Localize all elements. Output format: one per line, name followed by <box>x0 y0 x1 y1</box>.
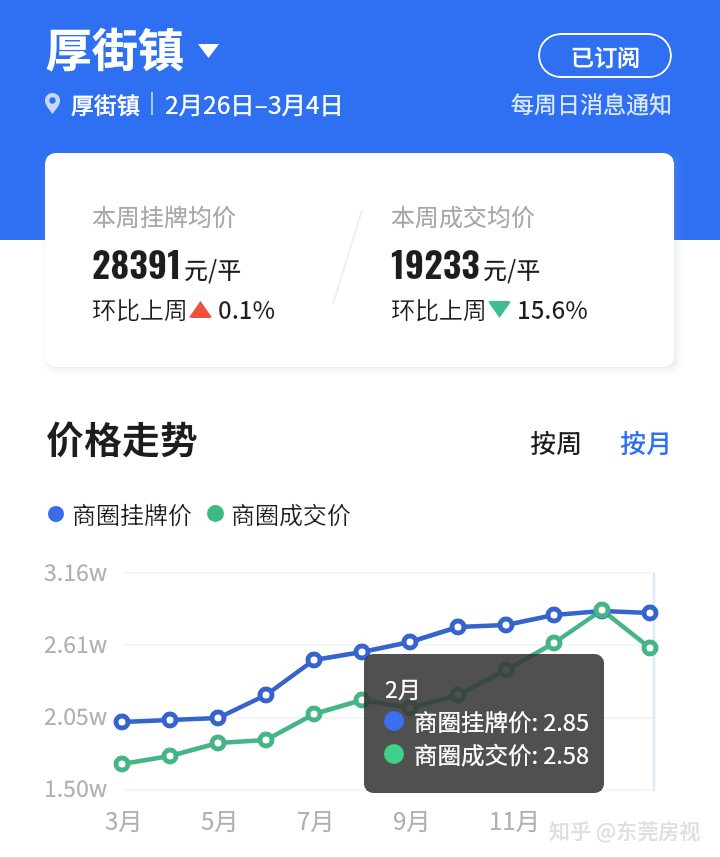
button[interactable]: 已订阅 <box>538 33 672 78</box>
button[interactable]: 按周 <box>522 415 591 469</box>
staticText: 每周日消息通知 <box>511 86 672 119</box>
staticText: 商圈挂牌价 <box>72 496 192 531</box>
staticText: 2.61w <box>44 626 108 659</box>
staticText: 元/平 <box>184 251 242 286</box>
staticText: 已订阅 <box>571 39 640 72</box>
staticText: 19233 <box>391 236 480 289</box>
other: Change area <box>198 44 219 58</box>
staticText: 3.16w <box>44 554 108 587</box>
staticText: 环比上周 <box>391 291 487 326</box>
staticText: 9月 <box>393 802 431 837</box>
staticText: 厚街镇 <box>71 87 140 120</box>
staticText: 价格走势 <box>46 410 199 465</box>
staticText: 商圈成交价 <box>231 496 351 531</box>
staticText: 2.05w <box>44 698 108 731</box>
button[interactable]: 本周挂牌均价 <box>45 153 674 367</box>
staticText: 商圈成交价: 2.58 <box>414 737 589 771</box>
button[interactable]: 厚街镇 <box>46 14 219 81</box>
staticText: 7月 <box>297 802 335 837</box>
staticText: 3月 <box>105 802 143 837</box>
staticText: 5月 <box>201 802 239 837</box>
staticText: 按周 <box>530 423 583 461</box>
staticText: 1.50w <box>44 770 108 803</box>
staticText: 28391 <box>92 236 181 289</box>
button[interactable]: 按月 <box>612 415 681 469</box>
staticText: 厚街镇 <box>46 14 184 81</box>
staticText: 0.1% <box>218 291 276 326</box>
staticText: 2月 <box>385 671 421 704</box>
staticText: 15.6% <box>517 291 588 326</box>
staticText: 2月26日–3月4日 <box>165 86 345 121</box>
staticText: 本周挂牌均价 <box>92 198 236 233</box>
staticText: 11月 <box>489 802 540 837</box>
staticText: 环比上周 <box>92 291 188 326</box>
staticText: 本周成交均价 <box>391 198 535 233</box>
staticText: 商圈挂牌价: 2.85 <box>414 704 589 738</box>
staticText: 元/平 <box>483 251 541 286</box>
staticText: 知乎 @东莞房视 <box>549 815 701 845</box>
staticText: 按月 <box>620 423 673 461</box>
